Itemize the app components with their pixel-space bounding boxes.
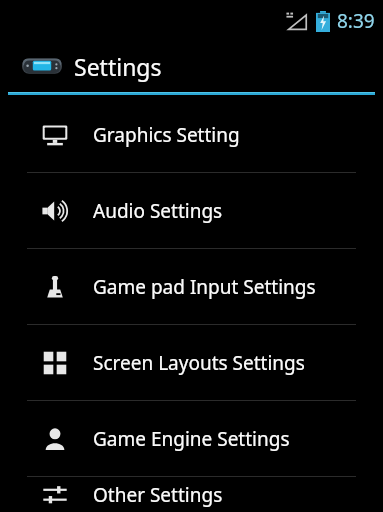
- staticText: Audio Settings: [93, 198, 223, 224]
- staticText: Settings: [74, 51, 162, 82]
- button[interactable]: Game Engine Settings: [0, 401, 383, 476]
- button[interactable]: Audio Settings: [0, 173, 383, 248]
- button[interactable]: Game pad Input Settings: [0, 249, 383, 324]
- staticText: Screen Layouts Settings: [93, 350, 305, 376]
- staticText: Other Settings: [93, 482, 223, 508]
- button[interactable]: Graphics Setting: [0, 97, 383, 172]
- staticText: Game Engine Settings: [93, 426, 290, 452]
- button[interactable]: Other Settings: [0, 477, 383, 512]
- button[interactable]: Screen Layouts Settings: [0, 325, 383, 400]
- button[interactable]: Settings: [0, 42, 383, 90]
- staticText: Graphics Setting: [93, 122, 240, 148]
- staticText: 8:39: [337, 8, 375, 34]
- staticText: Game pad Input Settings: [93, 274, 316, 300]
